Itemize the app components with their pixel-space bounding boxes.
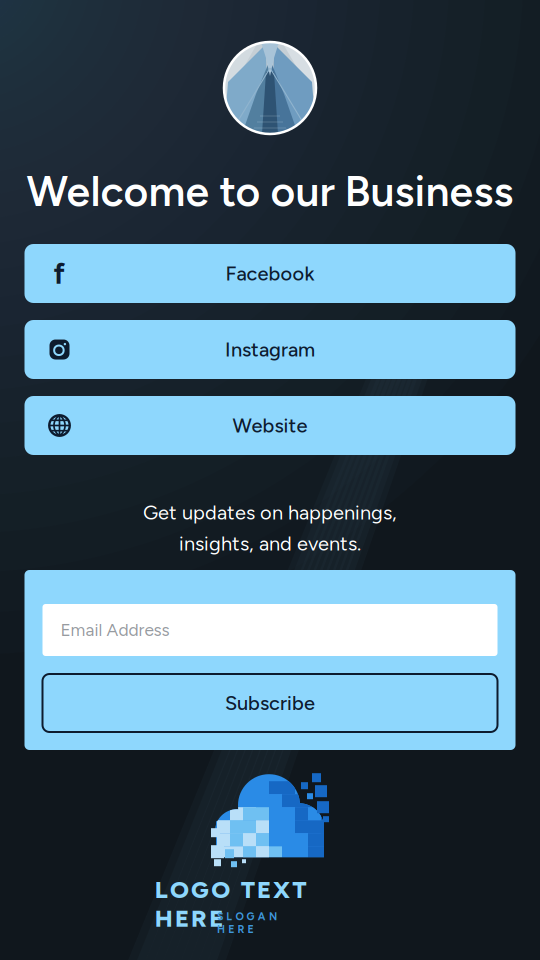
staticText: SLOGAN HERE bbox=[217, 910, 323, 923]
staticText: Subscribe bbox=[225, 691, 315, 715]
button[interactable]: Facebook bbox=[24, 244, 515, 303]
staticText: f bbox=[53, 256, 65, 291]
button[interactable]: Subscribe bbox=[42, 674, 497, 732]
staticText: Get updates on happenings, bbox=[143, 500, 397, 524]
staticText: Instagram bbox=[225, 337, 315, 361]
staticText: Website bbox=[232, 413, 307, 437]
staticText: Facebook bbox=[225, 261, 314, 285]
button[interactable]: Email Address bbox=[42, 604, 497, 656]
staticText: Welcome to our Business bbox=[26, 165, 513, 217]
button[interactable]: Website bbox=[24, 396, 515, 455]
staticText: LOGO TEXT HERE bbox=[155, 875, 385, 904]
staticText: Email Address bbox=[60, 620, 169, 640]
button[interactable]: Instagram bbox=[24, 320, 515, 379]
staticText: insights, and events. bbox=[179, 531, 361, 555]
